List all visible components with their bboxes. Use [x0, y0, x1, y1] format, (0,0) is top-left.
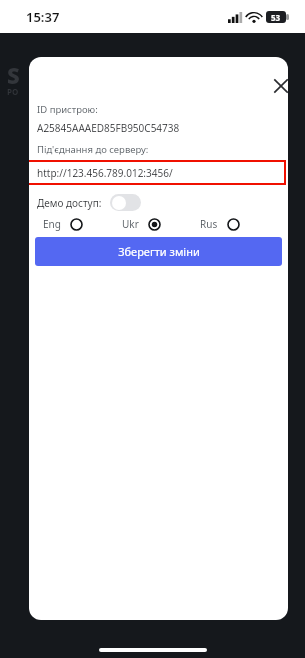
button[interactable]: http://123.456.789.012:3456/ — [29, 160, 286, 185]
button[interactable]: Demo access toggle — [110, 194, 141, 211]
staticText: ID пристрою: — [37, 103, 98, 116]
button[interactable]: Eng — [43, 217, 122, 231]
staticText: Зберегти зміни — [118, 244, 200, 259]
button[interactable]: Ukr — [122, 217, 200, 231]
staticText: 53 — [271, 12, 281, 23]
button[interactable]: Close — [266, 71, 288, 100]
button[interactable]: Зберегти зміни — [35, 237, 282, 266]
staticText: 15:37 — [26, 8, 60, 26]
staticText: S — [7, 60, 20, 90]
button[interactable]: Rus — [200, 217, 278, 231]
staticText: Rus — [200, 217, 218, 231]
staticText: Під'єднання до серверу: — [37, 143, 149, 156]
staticText: http://123.456.789.012:3456/ — [37, 166, 173, 180]
staticText: Демо доступ: — [37, 196, 102, 210]
staticText: Eng — [43, 217, 61, 231]
staticText: PO — [7, 86, 19, 97]
staticText: A25845AAAED85FB950C54738 — [37, 121, 180, 135]
staticText: Ukr — [122, 217, 139, 231]
